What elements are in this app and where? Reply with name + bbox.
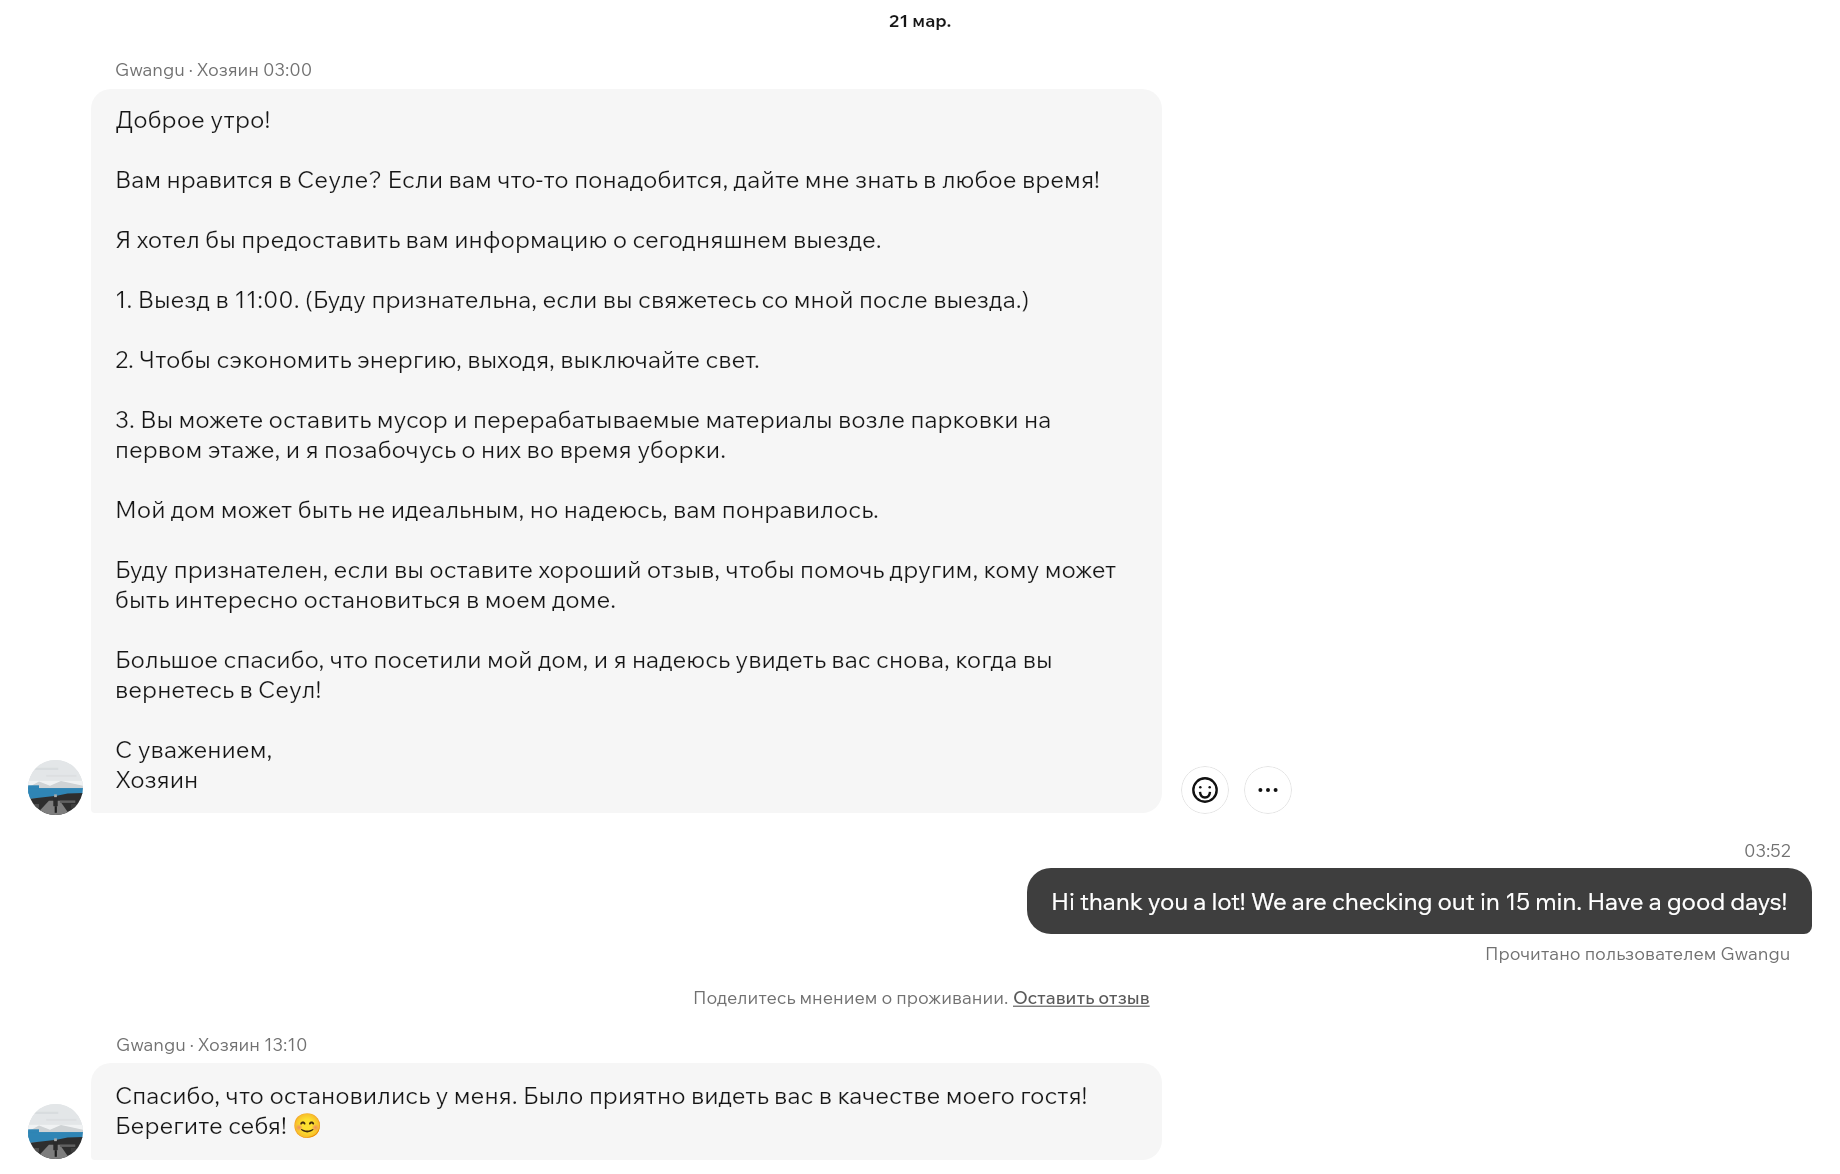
staticText: 21 мар. [889, 9, 952, 32]
staticText: Доброе утро! Вам нравится в Сеуле? Если … [115, 104, 1138, 794]
staticText: Спасибо, что остановились у меня. Было п… [115, 1080, 1088, 1140]
button[interactable]: Доброе утро! Вам нравится в Сеуле? Если … [91, 89, 1162, 813]
button[interactable]: Профиль Gwangu [28, 1104, 83, 1159]
staticText: Оставить отзыв [1013, 986, 1150, 1009]
button[interactable]: Спасибо, что остановились у меня. Было п… [91, 1063, 1162, 1160]
staticText: Hi thank you a lot! We are checking out … [1051, 886, 1788, 916]
button[interactable]: Добавить реакцию [1181, 766, 1229, 814]
staticText: Gwangu · Хозяин 03:00 [115, 58, 313, 81]
staticText: Поделитесь мнением о проживании. [693, 986, 1013, 1009]
button[interactable]: Ещё [1244, 766, 1292, 814]
button[interactable]: Оставить отзыв [1013, 986, 1150, 1009]
button[interactable]: Hi thank you a lot! We are checking out … [1027, 868, 1812, 934]
staticText: Прочитано пользователем Gwangu [1485, 942, 1791, 965]
button[interactable]: Профиль Gwangu [28, 760, 83, 815]
staticText: Gwangu · Хозяин 13:10 [116, 1033, 308, 1056]
staticText: 03:52 [1744, 839, 1791, 862]
